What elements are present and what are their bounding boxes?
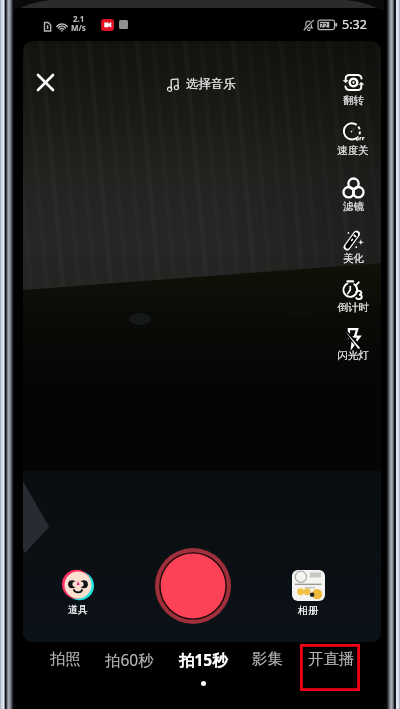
- staticText: 拍15秒: [179, 649, 228, 670]
- staticText: 美化: [343, 252, 364, 265]
- staticText: 5:32: [342, 16, 367, 33]
- button[interactable]: 翻转: [331, 71, 375, 107]
- staticText: 拍照: [50, 649, 81, 669]
- staticText: 开直播: [308, 649, 355, 669]
- button[interactable]: 相册: [283, 570, 333, 617]
- staticText: 道具: [68, 603, 88, 616]
- staticText: 相册: [298, 604, 318, 617]
- button[interactable]: 影集: [235, 645, 299, 673]
- staticText: 72: [320, 21, 328, 30]
- staticText: 翻转: [343, 94, 364, 107]
- button[interactable]: 拍60秒: [97, 645, 161, 673]
- button[interactable]: Record: [155, 548, 231, 624]
- staticText: 滤镜: [343, 200, 364, 213]
- staticText: 拍60秒: [105, 649, 154, 670]
- button[interactable]: 倒计时: [331, 278, 375, 314]
- staticText: 闪光灯: [337, 349, 369, 362]
- button[interactable]: 开直播: [299, 645, 363, 673]
- staticText: 速度关: [337, 144, 369, 157]
- staticText: M/s: [71, 22, 86, 33]
- button[interactable]: 速度关: [331, 121, 375, 157]
- staticText: 影集: [252, 649, 283, 669]
- button[interactable]: 闪光灯: [331, 326, 375, 362]
- button[interactable]: 拍15秒: [171, 645, 235, 673]
- staticText: 2.1: [73, 13, 85, 24]
- button[interactable]: 选择音乐: [163, 73, 240, 95]
- button[interactable]: 滤镜: [331, 177, 375, 213]
- staticText: 倒计时: [337, 301, 369, 314]
- button[interactable]: 美化: [331, 229, 375, 265]
- staticText: 选择音乐: [186, 76, 236, 92]
- button[interactable]: 拍照: [33, 645, 97, 673]
- button[interactable]: 道具: [53, 570, 103, 616]
- button[interactable]: Close: [28, 65, 62, 99]
